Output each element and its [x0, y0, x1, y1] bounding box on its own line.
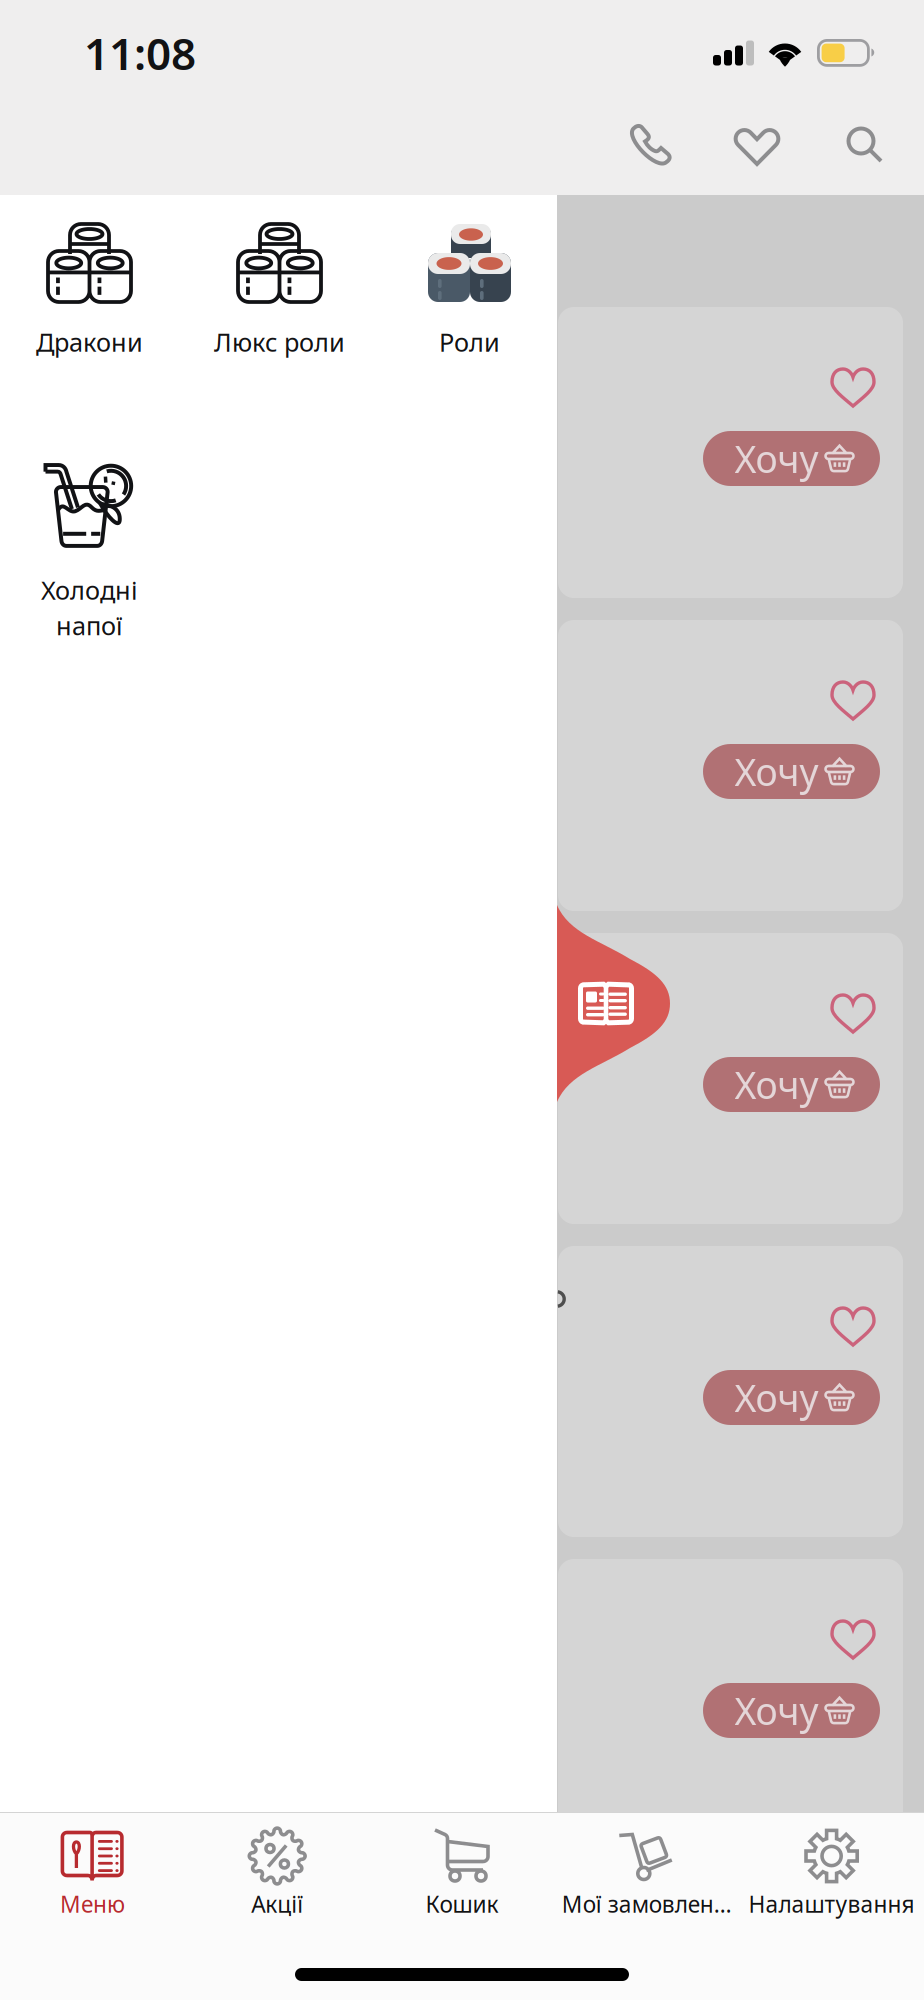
staticText: Акції	[251, 1889, 303, 1919]
button[interactable]: Favourites	[703, 122, 811, 170]
button[interactable]: Favourite	[829, 362, 877, 410]
staticText: Роли	[439, 325, 500, 359]
button[interactable]: Menu	[557, 905, 670, 1102]
staticText: напої	[56, 609, 123, 642]
button[interactable]: Хочу	[703, 744, 880, 799]
staticText: Хочу	[734, 1686, 818, 1735]
button[interactable]: Favourite	[829, 1614, 877, 1662]
staticText: Холодні	[41, 573, 138, 607]
button[interactable]: Роли	[374, 223, 564, 423]
staticText: Меню	[60, 1889, 125, 1919]
staticText: Мої замовлен…	[562, 1889, 732, 1919]
button[interactable]: Хочу	[703, 1683, 880, 1738]
staticText: Налаштування	[749, 1889, 915, 1919]
staticText: Дракони	[36, 325, 143, 359]
button[interactable]: Меню	[0, 1813, 185, 1938]
button[interactable]: Хочу	[703, 431, 880, 486]
button[interactable]: Favourite	[829, 675, 877, 723]
button[interactable]: Favourite	[829, 988, 877, 1036]
button[interactable]: Хочу	[703, 1370, 880, 1425]
staticText: Люкс роли	[214, 325, 345, 359]
staticText: Хочу	[734, 747, 818, 796]
button[interactable]: Люкс роли	[184, 223, 374, 423]
staticText: Хочу	[734, 1060, 818, 1109]
button[interactable]: Налаштування	[739, 1813, 924, 1938]
staticText: Хочу	[734, 1373, 818, 1422]
button[interactable]: Хочу	[703, 1057, 880, 1112]
staticText: Кошик	[425, 1889, 498, 1919]
staticText: 11:08	[84, 24, 196, 82]
button[interactable]: Favourite	[829, 1301, 877, 1349]
button[interactable]: Call	[595, 122, 703, 170]
button[interactable]: Кошик	[370, 1813, 554, 1938]
button[interactable]: Холодні	[0, 455, 184, 655]
button[interactable]: Search	[811, 122, 919, 170]
staticText: Хочу	[734, 434, 818, 483]
button[interactable]: Дракони	[0, 223, 184, 423]
button[interactable]: Акції	[185, 1813, 370, 1938]
button[interactable]: Мої замовлен…	[554, 1813, 739, 1938]
